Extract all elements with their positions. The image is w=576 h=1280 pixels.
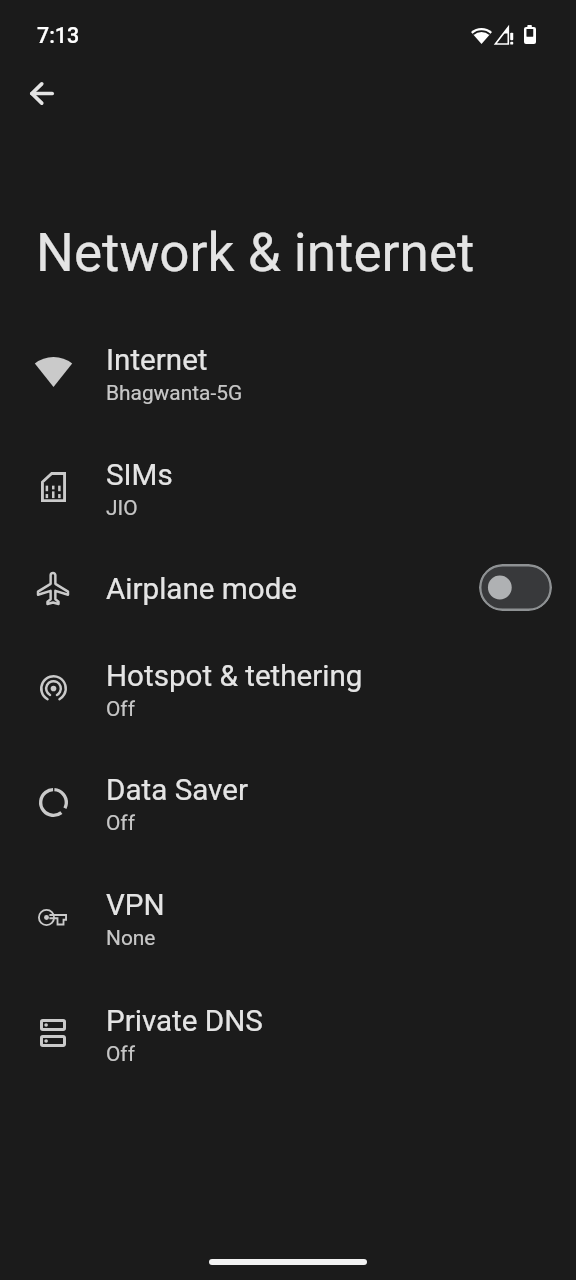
button[interactable]: Airplane mode toggle, off: [479, 564, 552, 611]
staticText: JIO: [106, 496, 138, 520]
button[interactable]: Internet: [0, 315, 576, 430]
staticText: Private DNS: [106, 1004, 263, 1039]
staticText: SIMs: [106, 458, 173, 493]
staticText: Off: [106, 697, 135, 721]
staticText: Bhagwanta-5G: [106, 381, 243, 405]
button[interactable]: Airplane mode: [0, 546, 576, 632]
staticText: Airplane mode: [106, 572, 298, 607]
button[interactable]: Data Saver: [0, 745, 576, 860]
staticText: VPN: [106, 888, 165, 923]
staticText: 7:13: [37, 23, 80, 48]
staticText: Network & internet: [36, 222, 475, 284]
staticText: Hotspot & tethering: [106, 659, 363, 694]
button[interactable]: Private DNS: [0, 976, 576, 1091]
button[interactable]: Navigate up: [18, 69, 66, 117]
button[interactable]: VPN: [0, 860, 576, 975]
staticText: Data Saver: [106, 773, 248, 808]
staticText: Internet: [106, 343, 208, 378]
staticText: Off: [106, 1042, 135, 1066]
staticText: None: [106, 926, 156, 950]
staticText: Off: [106, 811, 135, 835]
button[interactable]: Hotspot & tethering: [0, 631, 576, 746]
button[interactable]: SIMs: [0, 430, 576, 545]
